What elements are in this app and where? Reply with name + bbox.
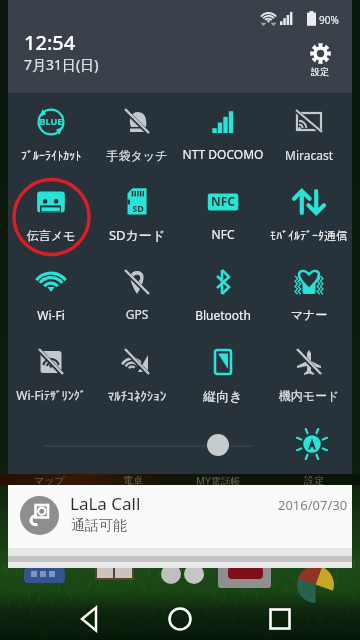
button[interactable]: Miracast [266, 93, 352, 155]
staticText: MY電話帳 [196, 474, 241, 488]
staticText: NTT DOCOMO [180, 146, 266, 162]
staticText: 2016/07/30 [278, 496, 348, 514]
staticText: Wi-Fi [8, 307, 94, 323]
button[interactable]: GPS [94, 253, 180, 315]
staticText: 7月31日(日) [24, 55, 99, 74]
staticText: マップ [34, 474, 65, 487]
button[interactable]: ホーム [150, 598, 210, 640]
staticText: マナー [266, 307, 352, 322]
button[interactable]: 手袋タッチ [94, 93, 180, 155]
button[interactable]: マナー [266, 253, 352, 315]
staticText: ﾓﾊﾞｲﾙﾃﾞｰﾀ通信 [266, 229, 352, 241]
button[interactable]: 設定 [296, 38, 344, 80]
staticText: NFC [180, 226, 266, 242]
staticText: Bluetooth [180, 307, 266, 323]
button[interactable]: ﾌﾞﾙｰﾗｲﾄｶｯﾄ [8, 93, 94, 155]
staticText: 通話可能 [71, 517, 127, 535]
button[interactable]: 自動輝度調整 [294, 426, 330, 462]
staticText: ﾏﾙﾁｺﾈｸｼｮﾝ [94, 390, 180, 403]
staticText: Miracast [266, 147, 352, 163]
staticText: GPS [94, 306, 180, 322]
button[interactable]: 縦向き [180, 333, 266, 395]
button[interactable]: NFC [180, 173, 266, 235]
staticText: 縦向き [180, 388, 266, 404]
button[interactable]: SDカード [94, 173, 180, 235]
button[interactable]: ﾓﾊﾞｲﾙﾃﾞｰﾀ通信 [266, 173, 352, 235]
staticText: 設定 [296, 66, 344, 77]
staticText: 90% [319, 13, 339, 27]
button[interactable]: 履歴 [250, 598, 310, 640]
button[interactable]: ﾏﾙﾁｺﾈｸｼｮﾝ [94, 333, 180, 395]
staticText: SDカード [94, 226, 180, 244]
staticText: 伝言メモ [8, 228, 94, 243]
button[interactable]: 戻る [60, 598, 120, 640]
button[interactable]: NTT DOCOMO [180, 93, 266, 155]
staticText: SD [95, 202, 181, 214]
button[interactable]: LaLa Call [8, 485, 352, 548]
staticText: 電卓 [123, 474, 143, 487]
button[interactable]: 機内モード [266, 333, 352, 395]
staticText: LaLa Call [70, 492, 141, 515]
staticText: ﾌﾞﾙｰﾗｲﾄｶｯﾄ [8, 149, 94, 161]
staticText: 機内モード [266, 388, 352, 403]
button[interactable]: Wi-Fiﾃｻﾞﾘﾝｸﾞ [8, 333, 94, 395]
staticText: 12:54 [24, 29, 76, 56]
button[interactable]: Bluetooth [180, 253, 266, 315]
staticText: NFC [180, 193, 266, 209]
staticText: Wi-Fiﾃｻﾞﾘﾝｸﾞ [8, 387, 94, 403]
staticText: 設定 [304, 474, 324, 487]
button[interactable]: Wi-Fi [8, 253, 94, 315]
button[interactable]: 伝言メモ [8, 173, 94, 235]
staticText: 手袋タッチ [94, 148, 180, 163]
staticText: BLUE [8, 115, 94, 127]
